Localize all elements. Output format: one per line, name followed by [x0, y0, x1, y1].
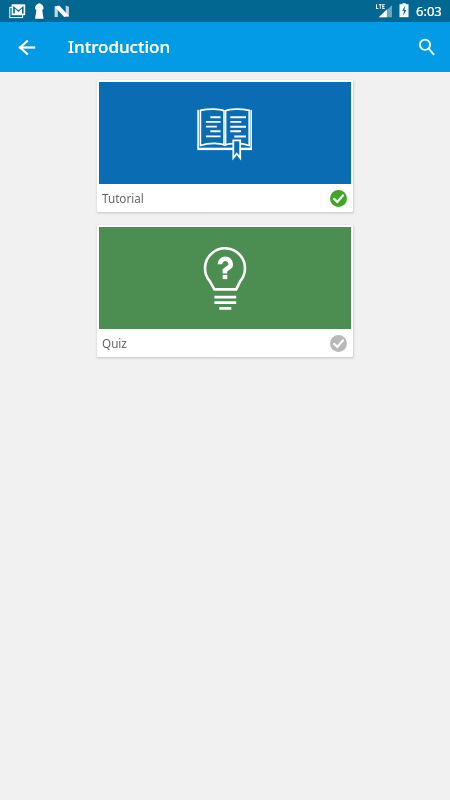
button[interactable]: Search — [402, 23, 450, 71]
button[interactable]: Tutorial — [97, 80, 353, 212]
button[interactable]: Back — [3, 23, 51, 71]
staticText: 6:03 — [416, 2, 442, 20]
staticText: Introduction — [68, 35, 171, 58]
button[interactable]: Quiz — [97, 225, 353, 357]
staticText: Quiz — [102, 335, 127, 351]
staticText: Tutorial — [102, 190, 144, 206]
